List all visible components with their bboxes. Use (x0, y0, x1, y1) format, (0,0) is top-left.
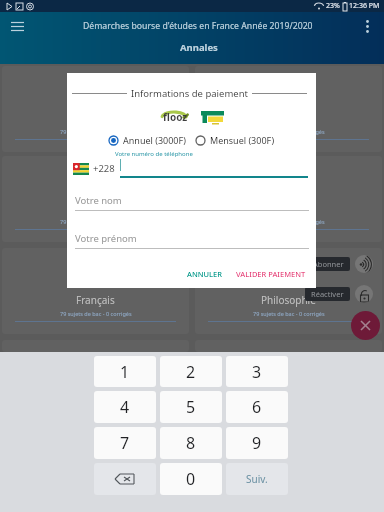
button[interactable]: ANNULER (182, 266, 228, 282)
staticText: Anglais (78, 201, 113, 215)
button[interactable]: VALIDER PAIEMENT (231, 266, 311, 282)
staticText: 79 sujets de bac - 0 corrigés (60, 218, 132, 225)
staticText: Français (76, 293, 115, 307)
staticText: 6 (252, 396, 262, 418)
staticText: 9 (252, 432, 262, 454)
button[interactable]: Anglais (2, 156, 189, 242)
staticText: Histoire (270, 201, 307, 215)
button[interactable]: Close menu (351, 311, 380, 340)
staticText: Mensuel (300F) (210, 134, 275, 146)
staticText: 79 sujets de bac - 0 corrigés (253, 310, 325, 317)
button[interactable]: 5 (160, 391, 222, 423)
button[interactable]: Unlock (355, 285, 373, 303)
staticText: +228 (93, 162, 115, 175)
staticText: 79 sujets de bac - 0 corrigés (60, 128, 132, 135)
staticText: Philosophie (261, 293, 316, 307)
staticText: 3 (252, 361, 262, 383)
button[interactable]: Suiv. (226, 463, 288, 495)
staticText: 79 sujets de bac - 0 corrigés (60, 310, 132, 317)
staticText: 2 (186, 361, 196, 383)
staticText: 12:36 PM (349, 1, 380, 11)
button[interactable]: Annuel (3000F) (108, 134, 187, 146)
button[interactable]: 8 (160, 427, 222, 459)
staticText: 7 (120, 432, 130, 454)
button[interactable]: Broadcast (355, 255, 373, 273)
staticText: Réactiver (311, 289, 344, 299)
staticText: flooz (163, 110, 188, 124)
staticText: Suiv. (246, 472, 268, 486)
staticText: Démarches bourse d'études en France Anné… (83, 20, 313, 32)
button[interactable]: 2 (160, 356, 222, 387)
staticText: Abonner (313, 259, 344, 269)
button[interactable]: More options (350, 12, 384, 40)
staticText: 4 (120, 396, 130, 418)
staticText: Annales (180, 41, 218, 54)
staticText: 0 (186, 468, 196, 490)
staticText: Votre numéro de téléphone (115, 150, 193, 158)
button[interactable]: 9 (226, 427, 288, 459)
other: Delete (115, 473, 135, 485)
button[interactable]: Histoire (195, 156, 382, 242)
button[interactable]: Delete (94, 463, 156, 495)
button[interactable]: 6 (226, 391, 288, 423)
staticText: VALIDER PAIEMENT (236, 269, 306, 279)
button[interactable]: Français (2, 248, 189, 334)
staticText: 8 (186, 432, 196, 454)
button[interactable]: 3 (226, 356, 288, 387)
button[interactable]: 1 (94, 356, 156, 387)
staticText: 79 sujets de bac - 0 corrigés (253, 128, 325, 135)
button[interactable]: Sciences (2, 66, 189, 152)
staticText: Informations de paiement (131, 87, 248, 100)
button[interactable]: 7 (94, 427, 156, 459)
staticText: ANNULER (187, 269, 223, 279)
button[interactable]: 0 (160, 463, 222, 495)
staticText: 5 (186, 396, 196, 418)
button[interactable]: 4 (94, 391, 156, 423)
staticText: 23% (326, 1, 340, 11)
button[interactable]: Maths (195, 66, 382, 152)
staticText: Votre nom (75, 194, 122, 207)
staticText: 79 sujets de bac - 0 corrigés (253, 218, 325, 225)
staticText: Annuel (3000F) (123, 134, 187, 146)
button[interactable]: Open navigation menu (0, 12, 34, 40)
button[interactable]: Philosophie (195, 248, 382, 334)
button[interactable]: Mensuel (300F) (195, 134, 275, 146)
staticText: 1 (120, 361, 130, 383)
staticText: Votre prénom (75, 232, 137, 245)
